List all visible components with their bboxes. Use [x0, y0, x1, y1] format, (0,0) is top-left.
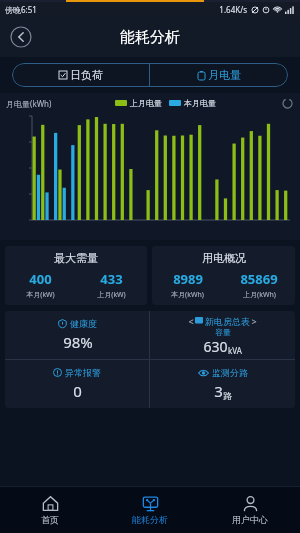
staticText: kVA — [228, 345, 242, 356]
button[interactable]: Refresh — [280, 96, 294, 110]
staticText: 健康度 — [70, 318, 97, 329]
staticText: 异常报警 — [65, 367, 101, 378]
staticText: 1.64K/s — [219, 4, 247, 15]
staticText: 本月(kWh) — [171, 290, 204, 300]
staticText: 上月电量 — [130, 98, 162, 108]
staticText: 98% — [63, 332, 93, 352]
staticText: 0 — [73, 381, 82, 401]
staticText: 本月电量 — [184, 98, 216, 108]
button[interactable]: 健康度 — [5, 311, 149, 359]
button[interactable]: 月电量 — [150, 63, 288, 87]
staticText: 3 — [214, 381, 223, 401]
staticText: 容量 — [215, 327, 231, 337]
button[interactable]: 异常报警 — [5, 360, 149, 408]
staticText: 能耗分析 — [132, 514, 168, 525]
staticText: 上月(kWh) — [243, 290, 276, 300]
staticText: 8989 — [173, 270, 203, 288]
staticText: 上月(kW) — [97, 290, 126, 300]
button[interactable]: Back — [10, 26, 32, 48]
staticText: < — [188, 315, 194, 327]
button[interactable]: 用户中心 — [200, 487, 300, 533]
staticText: 400 — [29, 270, 52, 288]
staticText: 能耗分析 — [120, 28, 180, 47]
staticText: 新电房总表 — [205, 316, 250, 327]
button[interactable]: 首页 — [0, 487, 100, 533]
staticText: 傍晚6:51 — [5, 4, 37, 15]
staticText: 首页 — [41, 514, 59, 525]
button[interactable]: < — [150, 311, 295, 359]
staticText: 月电量(kWh) — [6, 98, 52, 109]
button[interactable]: 能耗分析 — [100, 487, 200, 533]
button[interactable]: 日负荷 — [12, 63, 149, 87]
button[interactable]: 监测分路 — [150, 360, 295, 408]
staticText: 日负荷 — [70, 68, 103, 82]
staticText: 用户中心 — [232, 514, 268, 525]
staticText: 本月(kW) — [26, 290, 55, 300]
staticText: 最大需量 — [54, 251, 98, 265]
button[interactable]: 用电概况 — [152, 246, 295, 305]
staticText: 路 — [223, 390, 232, 401]
button[interactable]: 最大需量 — [5, 246, 147, 305]
staticText: 月电量 — [208, 68, 241, 82]
staticText: 用电概况 — [202, 251, 246, 265]
staticText: 630 — [203, 337, 228, 356]
staticText: 433 — [100, 270, 123, 288]
staticText: 85869 — [240, 270, 278, 288]
staticText: 监测分路 — [212, 367, 248, 378]
staticText: > — [251, 315, 257, 327]
